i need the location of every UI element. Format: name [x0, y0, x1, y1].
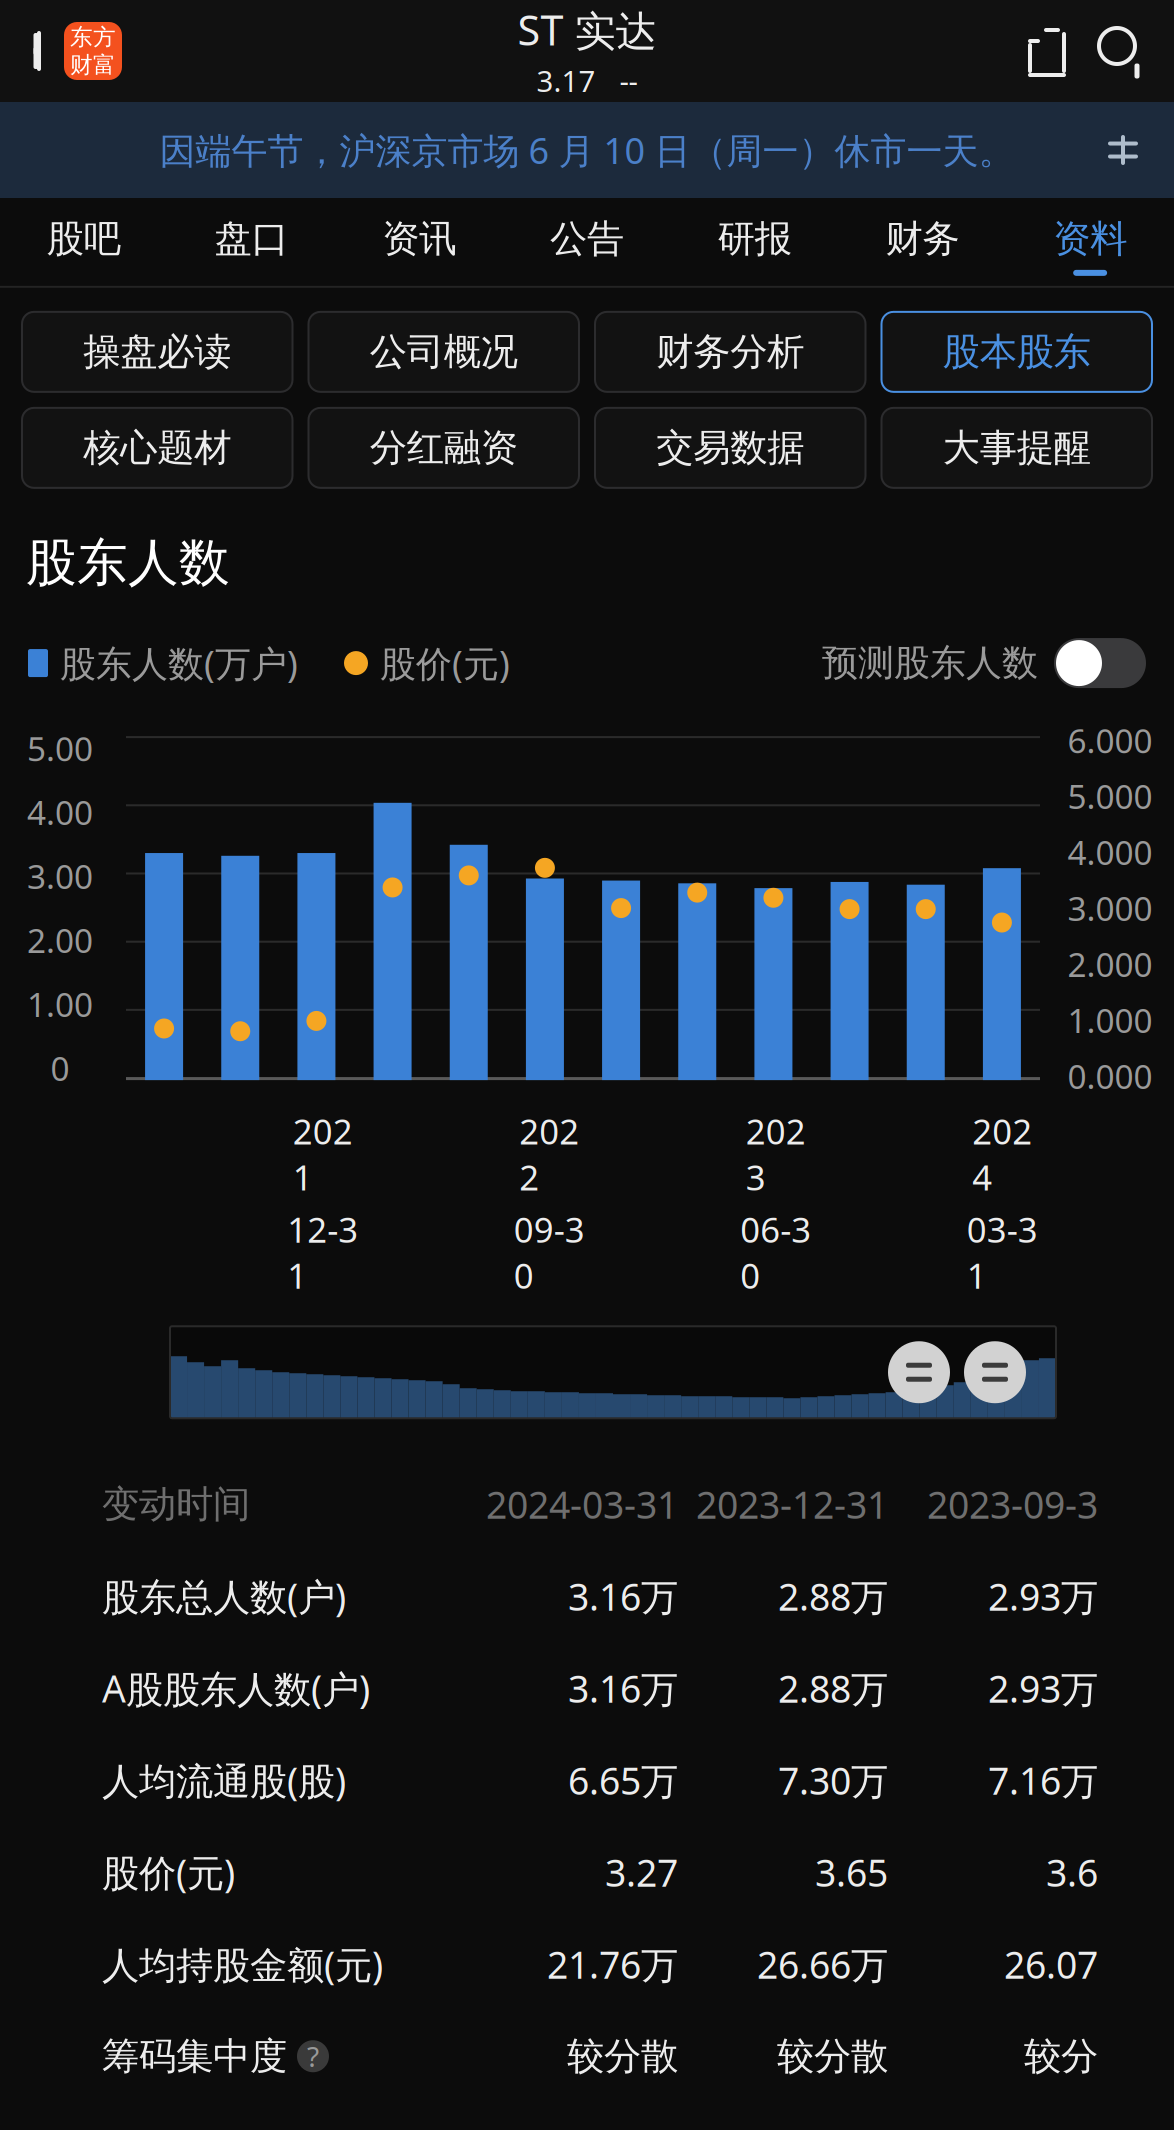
- staticText: 公告: [550, 216, 624, 262]
- staticText: 5.000: [1067, 774, 1152, 818]
- staticText: 3.65: [815, 1847, 888, 1897]
- staticText: 2024-03-31: [486, 1479, 678, 1529]
- button[interactable]: 财务: [839, 198, 1006, 286]
- staticText: 股价(元): [380, 639, 510, 687]
- staticText: 股本股东: [943, 329, 1091, 375]
- button[interactable]: 缩放范围左手柄: [888, 1341, 950, 1403]
- staticText: ?: [307, 2038, 319, 2075]
- button[interactable]: 核心题材: [22, 408, 292, 488]
- button[interactable]: 预测股东人数开关，关: [1054, 638, 1146, 688]
- staticText: 筹码集中度: [102, 2033, 287, 2079]
- staticText: 因端午节，沪深京市场 6 月 10 日（周一）休市一天。: [159, 126, 1014, 174]
- button[interactable]: 大事提醒: [881, 408, 1152, 488]
- staticText: 操盘必读: [83, 329, 231, 375]
- staticText: 3.00: [27, 854, 93, 898]
- button[interactable]: 关闭提示: [1090, 117, 1156, 183]
- staticText: 21.76万: [547, 1939, 678, 1989]
- staticText: 分红融资: [370, 425, 518, 471]
- staticText: 3.000: [1067, 886, 1152, 930]
- button[interactable]: 东方财富: [64, 22, 122, 80]
- staticText: 6.000: [1067, 718, 1152, 762]
- staticText: 公司概况: [370, 329, 518, 375]
- staticText: 2.000: [1067, 942, 1152, 986]
- staticText: 人均持股金额(元): [102, 1939, 383, 1989]
- staticText: 3.16万: [568, 1571, 678, 1621]
- button[interactable]: 股吧: [0, 198, 168, 286]
- staticText: 2021: [293, 1108, 353, 1200]
- staticText: 2.93万: [988, 1571, 1098, 1621]
- button[interactable]: 资料: [1006, 198, 1174, 286]
- staticText: 财务分析: [656, 329, 804, 375]
- staticText: 2.93万: [988, 1663, 1098, 1713]
- button[interactable]: 分红融资: [308, 408, 579, 488]
- staticText: 财富: [70, 51, 116, 79]
- staticText: 股东人数: [26, 532, 230, 594]
- staticText: 3.27: [605, 1847, 678, 1897]
- staticText: 0.000: [1067, 1054, 1152, 1098]
- button[interactable]: 公司概况: [308, 312, 579, 392]
- staticText: 股吧: [47, 216, 121, 262]
- button[interactable]: 搜索: [1092, 20, 1150, 82]
- staticText: ST 实达: [517, 2, 656, 57]
- staticText: 2.00: [27, 918, 93, 962]
- staticText: 4.000: [1067, 830, 1152, 874]
- staticText: 大事提醒: [943, 425, 1091, 471]
- staticText: 3.17 --: [536, 61, 637, 100]
- button[interactable]: 交易数据: [595, 408, 865, 488]
- staticText: 5.00: [27, 726, 93, 770]
- staticText: 2023-12-31: [696, 1479, 888, 1529]
- staticText: 2.88万: [778, 1663, 888, 1713]
- staticText: 26.07: [1004, 1939, 1098, 1989]
- staticText: 股东人数(万户): [60, 639, 298, 687]
- button[interactable]: 资讯: [335, 198, 503, 286]
- button[interactable]: 股本股东: [881, 312, 1152, 392]
- staticText: 股东总人数(户): [102, 1571, 346, 1621]
- button[interactable]: 公告: [503, 198, 671, 286]
- staticText: 09-30: [514, 1206, 585, 1298]
- staticText: 7.16万: [988, 1755, 1098, 1805]
- staticText: 资料: [1053, 216, 1127, 262]
- staticText: 2022: [519, 1108, 579, 1200]
- staticText: A股股东人数(户): [102, 1663, 370, 1713]
- button[interactable]: 财务分析: [595, 312, 865, 392]
- staticText: 东方: [70, 23, 116, 51]
- button[interactable]: 盘口: [168, 198, 335, 286]
- button[interactable]: 分享: [1016, 15, 1078, 87]
- staticText: 核心题材: [83, 425, 231, 471]
- staticText: 较分散: [777, 2033, 888, 2079]
- staticText: 0: [50, 1046, 69, 1090]
- staticText: 财务: [885, 216, 959, 262]
- staticText: 26.66万: [757, 1939, 888, 1989]
- staticText: 3.16万: [568, 1663, 678, 1713]
- button[interactable]: 操盘必读: [22, 312, 292, 392]
- staticText: 2023: [746, 1108, 806, 1200]
- staticText: 3.6: [1046, 1847, 1098, 1897]
- staticText: 2.88万: [778, 1571, 888, 1621]
- staticText: 4.00: [27, 790, 93, 834]
- staticText: 03-31: [967, 1206, 1038, 1298]
- button[interactable]: 缩放范围右手柄: [964, 1341, 1026, 1403]
- staticText: 较分: [1024, 2033, 1098, 2079]
- staticText: 股价(元): [102, 1847, 235, 1897]
- staticText: 变动时间: [102, 1481, 250, 1527]
- staticText: 2023-09-3: [927, 1479, 1098, 1529]
- staticText: 12-31: [287, 1206, 358, 1298]
- staticText: 研报: [718, 216, 792, 262]
- staticText: 预测股东人数: [822, 641, 1038, 685]
- staticText: 盘口: [215, 216, 289, 262]
- staticText: 1.00: [27, 982, 93, 1026]
- staticText: 6.65万: [568, 1755, 678, 1805]
- staticText: 06-30: [740, 1206, 811, 1298]
- staticText: 较分散: [567, 2033, 678, 2079]
- button[interactable]: 返回: [14, 16, 64, 86]
- staticText: 交易数据: [656, 425, 804, 471]
- staticText: 资讯: [382, 216, 456, 262]
- staticText: 7.30万: [778, 1755, 888, 1805]
- staticText: 1.000: [1067, 998, 1152, 1042]
- staticText: 2024: [972, 1108, 1032, 1200]
- staticText: 人均流通股(股): [102, 1755, 346, 1805]
- button[interactable]: 研报: [671, 198, 839, 286]
